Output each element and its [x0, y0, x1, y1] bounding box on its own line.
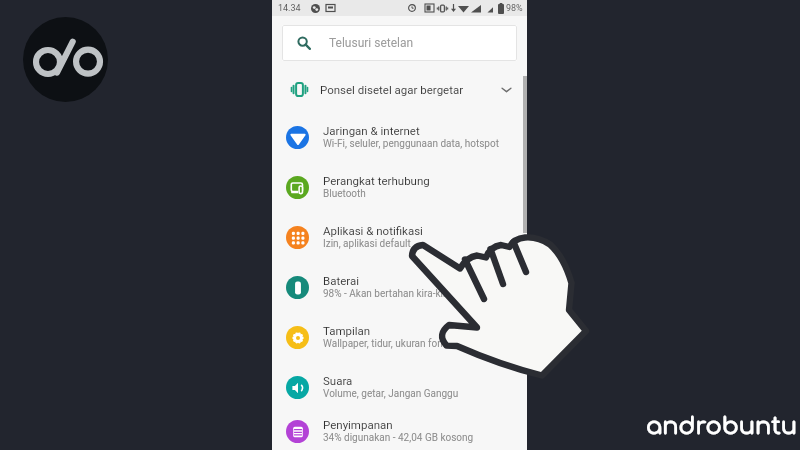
staticText: Bluetooth: [323, 188, 366, 200]
button[interactable]: Penyimpanan: [272, 412, 527, 450]
staticText: 98% - Akan bertahan kira-kira: [323, 288, 452, 300]
staticText: Baterai: [323, 274, 360, 287]
other: Expand: [500, 83, 513, 96]
staticText: Perangkat terhubung: [323, 174, 430, 187]
staticText: Aplikasi & notifikasi: [323, 224, 423, 237]
staticText: 14.34: [278, 3, 301, 14]
button[interactable]: Suara: [272, 362, 527, 412]
button[interactable]: Ponsel disetel agar bergetar: [272, 66, 527, 112]
staticText: Volume, getar, Jangan Ganggu: [323, 388, 459, 400]
other: Tap pointer: [405, 237, 600, 387]
button[interactable]: Jaringan & internet: [272, 112, 527, 162]
staticText: 34% digunakan - 42,04 GB kosong: [323, 432, 474, 444]
staticText: androbuntu: [646, 413, 798, 440]
staticText: 98%: [506, 3, 523, 14]
button[interactable]: Baterai: [272, 262, 527, 312]
button[interactable]: Perangkat terhubung: [272, 162, 527, 212]
button[interactable]: Aplikasi & notifikasi: [272, 212, 527, 262]
staticText: Penyimpanan: [323, 418, 393, 431]
staticText: Jaringan & internet: [323, 124, 420, 137]
staticText: Wallpaper, tidur, ukuran font: [323, 338, 447, 350]
staticText: Suara: [323, 374, 353, 387]
other: Search: [297, 36, 311, 50]
button[interactable]: Search: [282, 25, 517, 61]
staticText: Telusuri setelan: [329, 36, 414, 50]
staticText: Tampilan: [323, 324, 371, 337]
staticText: Ponsel disetel agar bergetar: [320, 83, 464, 96]
staticText: Wi-Fi, seluler, penggunaan data, hotspot: [323, 138, 499, 150]
button[interactable]: Androbuntu logo: [23, 17, 108, 102]
button[interactable]: Tampilan: [272, 312, 527, 362]
staticText: Izin, aplikasi default: [323, 238, 411, 250]
